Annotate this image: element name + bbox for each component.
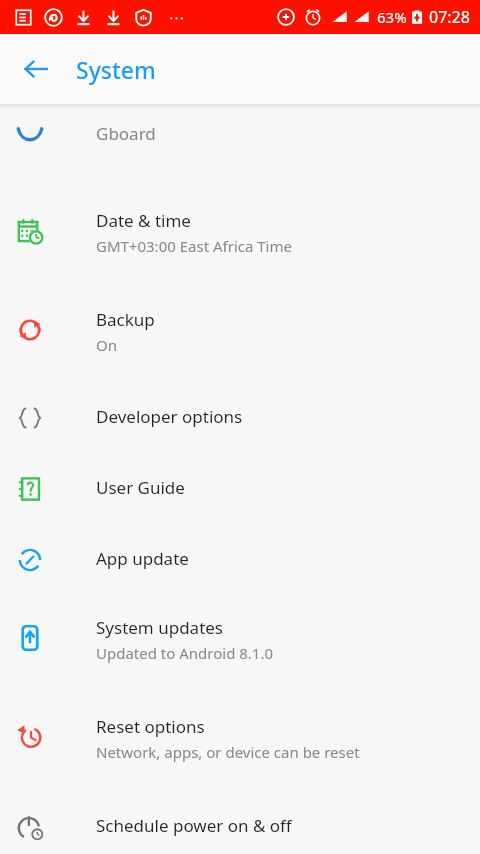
- staticText: Schedule power on & off: [96, 814, 292, 837]
- button[interactable]: Backup: [0, 290, 480, 364]
- staticText: Reset options: [96, 715, 205, 738]
- button[interactable]: App update: [0, 529, 480, 585]
- button[interactable]: Gboard: [0, 104, 480, 160]
- staticText: Developer options: [96, 405, 243, 428]
- staticText: 07:28: [429, 6, 470, 28]
- button[interactable]: User Guide: [0, 458, 480, 514]
- staticText: Backup: [96, 308, 155, 331]
- staticText: On: [96, 335, 117, 355]
- staticText: System: [76, 54, 156, 85]
- button[interactable]: Reset options: [0, 697, 480, 771]
- staticText: Updated to Android 8.1.0: [96, 643, 274, 663]
- button[interactable]: Schedule power on & off: [0, 796, 480, 852]
- staticText: 63%: [377, 7, 407, 27]
- staticText: Gboard: [96, 122, 156, 145]
- staticText: App update: [96, 547, 189, 570]
- staticText: GMT+03:00 East Africa Time: [96, 236, 292, 256]
- staticText: Date & time: [96, 209, 191, 232]
- button[interactable]: Back: [12, 45, 60, 93]
- staticText: User Guide: [96, 476, 185, 499]
- staticText: Network, apps, or device can be reset: [96, 742, 360, 762]
- button[interactable]: Date & time: [0, 191, 480, 265]
- button[interactable]: System updates: [0, 598, 480, 672]
- staticText: System updates: [96, 616, 224, 639]
- button[interactable]: Developer options: [0, 387, 480, 443]
